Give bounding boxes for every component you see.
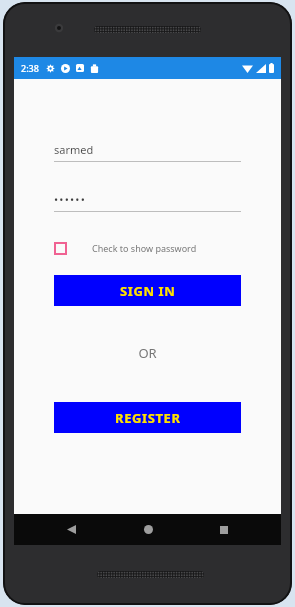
button[interactable]: sarmed xyxy=(54,139,241,162)
button[interactable]: Check to show password xyxy=(54,235,197,261)
staticText: 2:38 xyxy=(21,62,39,74)
staticText: SIGN IN xyxy=(120,282,176,300)
button[interactable]: •••••• xyxy=(54,189,241,212)
staticText: REGISTER xyxy=(115,409,181,427)
staticText: OR xyxy=(14,344,281,362)
staticText: •••••• xyxy=(54,192,87,207)
button[interactable]: Recent apps xyxy=(204,514,244,545)
staticText: sarmed xyxy=(54,142,94,157)
button[interactable]: REGISTER xyxy=(54,402,241,433)
button[interactable]: Back xyxy=(51,514,91,545)
staticText: Check to show password xyxy=(92,242,197,254)
button[interactable]: SIGN IN xyxy=(54,275,241,306)
button[interactable]: Home xyxy=(128,514,168,545)
